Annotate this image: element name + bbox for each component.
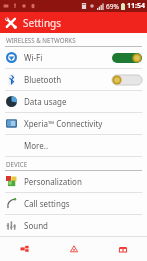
other: Settings tools [4, 16, 18, 30]
button[interactable]: Data usage [0, 91, 147, 112]
button[interactable]: Recents [0, 237, 49, 261]
staticText: Settings [23, 16, 62, 30]
staticText: More.. [24, 140, 49, 151]
button[interactable]: Personalization [0, 171, 147, 192]
staticText: 69% [106, 2, 119, 11]
button[interactable]: Xperia™ Connectivity [0, 113, 147, 134]
staticText: Wi-Fi [24, 52, 43, 63]
staticText: 11:54 [127, 1, 145, 11]
button[interactable]: Settings tools [0, 12, 147, 33]
staticText: Call settings [24, 198, 70, 209]
button[interactable]: Home [98, 237, 147, 261]
button[interactable]: Wi-Fi [0, 47, 147, 68]
button[interactable]: Off [112, 75, 142, 85]
staticText: Bluetooth [24, 74, 62, 85]
button[interactable]: Back [49, 237, 98, 261]
staticText: DEVICE [6, 160, 28, 168]
staticText: Data usage [24, 96, 67, 107]
staticText: Sound [24, 220, 49, 231]
button[interactable]: Sound [0, 215, 147, 236]
staticText: WIRELESS & NETWORKS [6, 36, 76, 44]
button[interactable]: More.. [0, 135, 147, 156]
button[interactable]: Call settings [0, 193, 147, 214]
staticText: Personalization [24, 176, 82, 187]
staticText: Xperia™ Connectivity [24, 118, 103, 129]
button[interactable]: Bluetooth [0, 69, 147, 90]
button[interactable]: On [112, 53, 142, 63]
